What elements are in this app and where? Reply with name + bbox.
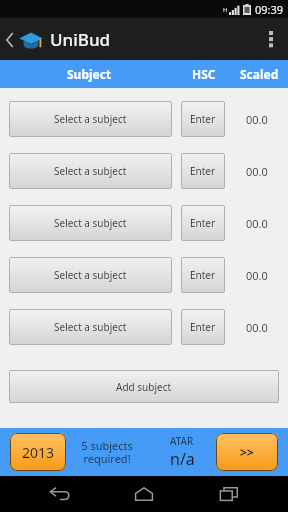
staticText: Subject xyxy=(67,66,112,82)
staticText: Select a subject xyxy=(54,216,127,230)
staticText: 00.0 xyxy=(246,320,268,335)
button[interactable]: More options xyxy=(254,18,288,60)
button[interactable]: >> xyxy=(216,433,278,471)
button[interactable]: Select a subject xyxy=(9,205,172,241)
button[interactable]: Select a subject xyxy=(9,309,172,345)
staticText: Enter xyxy=(190,216,216,230)
staticText: Enter xyxy=(190,268,216,282)
staticText: Select a subject xyxy=(54,268,127,282)
button[interactable]: Back xyxy=(35,476,85,512)
button[interactable]: Enter xyxy=(181,205,225,241)
staticText: Enter xyxy=(190,164,216,178)
button[interactable]: Select a subject xyxy=(9,153,172,189)
staticText: Select a subject xyxy=(54,112,127,126)
staticText: 00.0 xyxy=(246,112,268,127)
staticText: UniBud xyxy=(50,28,111,51)
button[interactable]: Select a subject xyxy=(9,101,172,137)
button[interactable]: 2013 xyxy=(10,433,66,471)
staticText: Enter xyxy=(190,112,216,126)
staticText: 00.0 xyxy=(246,164,268,179)
staticText: Enter xyxy=(190,320,216,334)
other: Back xyxy=(6,33,15,47)
staticText: Select a subject xyxy=(54,320,127,334)
button[interactable]: Enter xyxy=(181,101,225,137)
button[interactable]: Add subject xyxy=(9,370,279,403)
staticText: 09:39 xyxy=(255,2,284,17)
staticText: 00.0 xyxy=(246,268,268,283)
button[interactable]: Home xyxy=(119,476,169,512)
button[interactable]: Back xyxy=(4,28,113,51)
staticText: 2013 xyxy=(22,443,55,462)
button[interactable]: Enter xyxy=(181,257,225,293)
button[interactable]: Enter xyxy=(181,309,225,345)
button[interactable]: Enter xyxy=(181,153,225,189)
staticText: Scaled xyxy=(240,66,279,82)
staticText: ATAR xyxy=(170,434,194,448)
staticText: n/a xyxy=(170,448,195,470)
staticText: >> xyxy=(240,444,254,460)
staticText: H xyxy=(223,6,228,14)
button[interactable]: Recent apps xyxy=(204,476,254,512)
staticText: Select a subject xyxy=(54,164,127,178)
staticText: 00.0 xyxy=(246,216,268,231)
button[interactable]: Select a subject xyxy=(9,257,172,293)
staticText: HSC xyxy=(192,66,216,82)
staticText: 5 subjects required! xyxy=(81,438,133,466)
staticText: Add subject xyxy=(116,380,172,394)
